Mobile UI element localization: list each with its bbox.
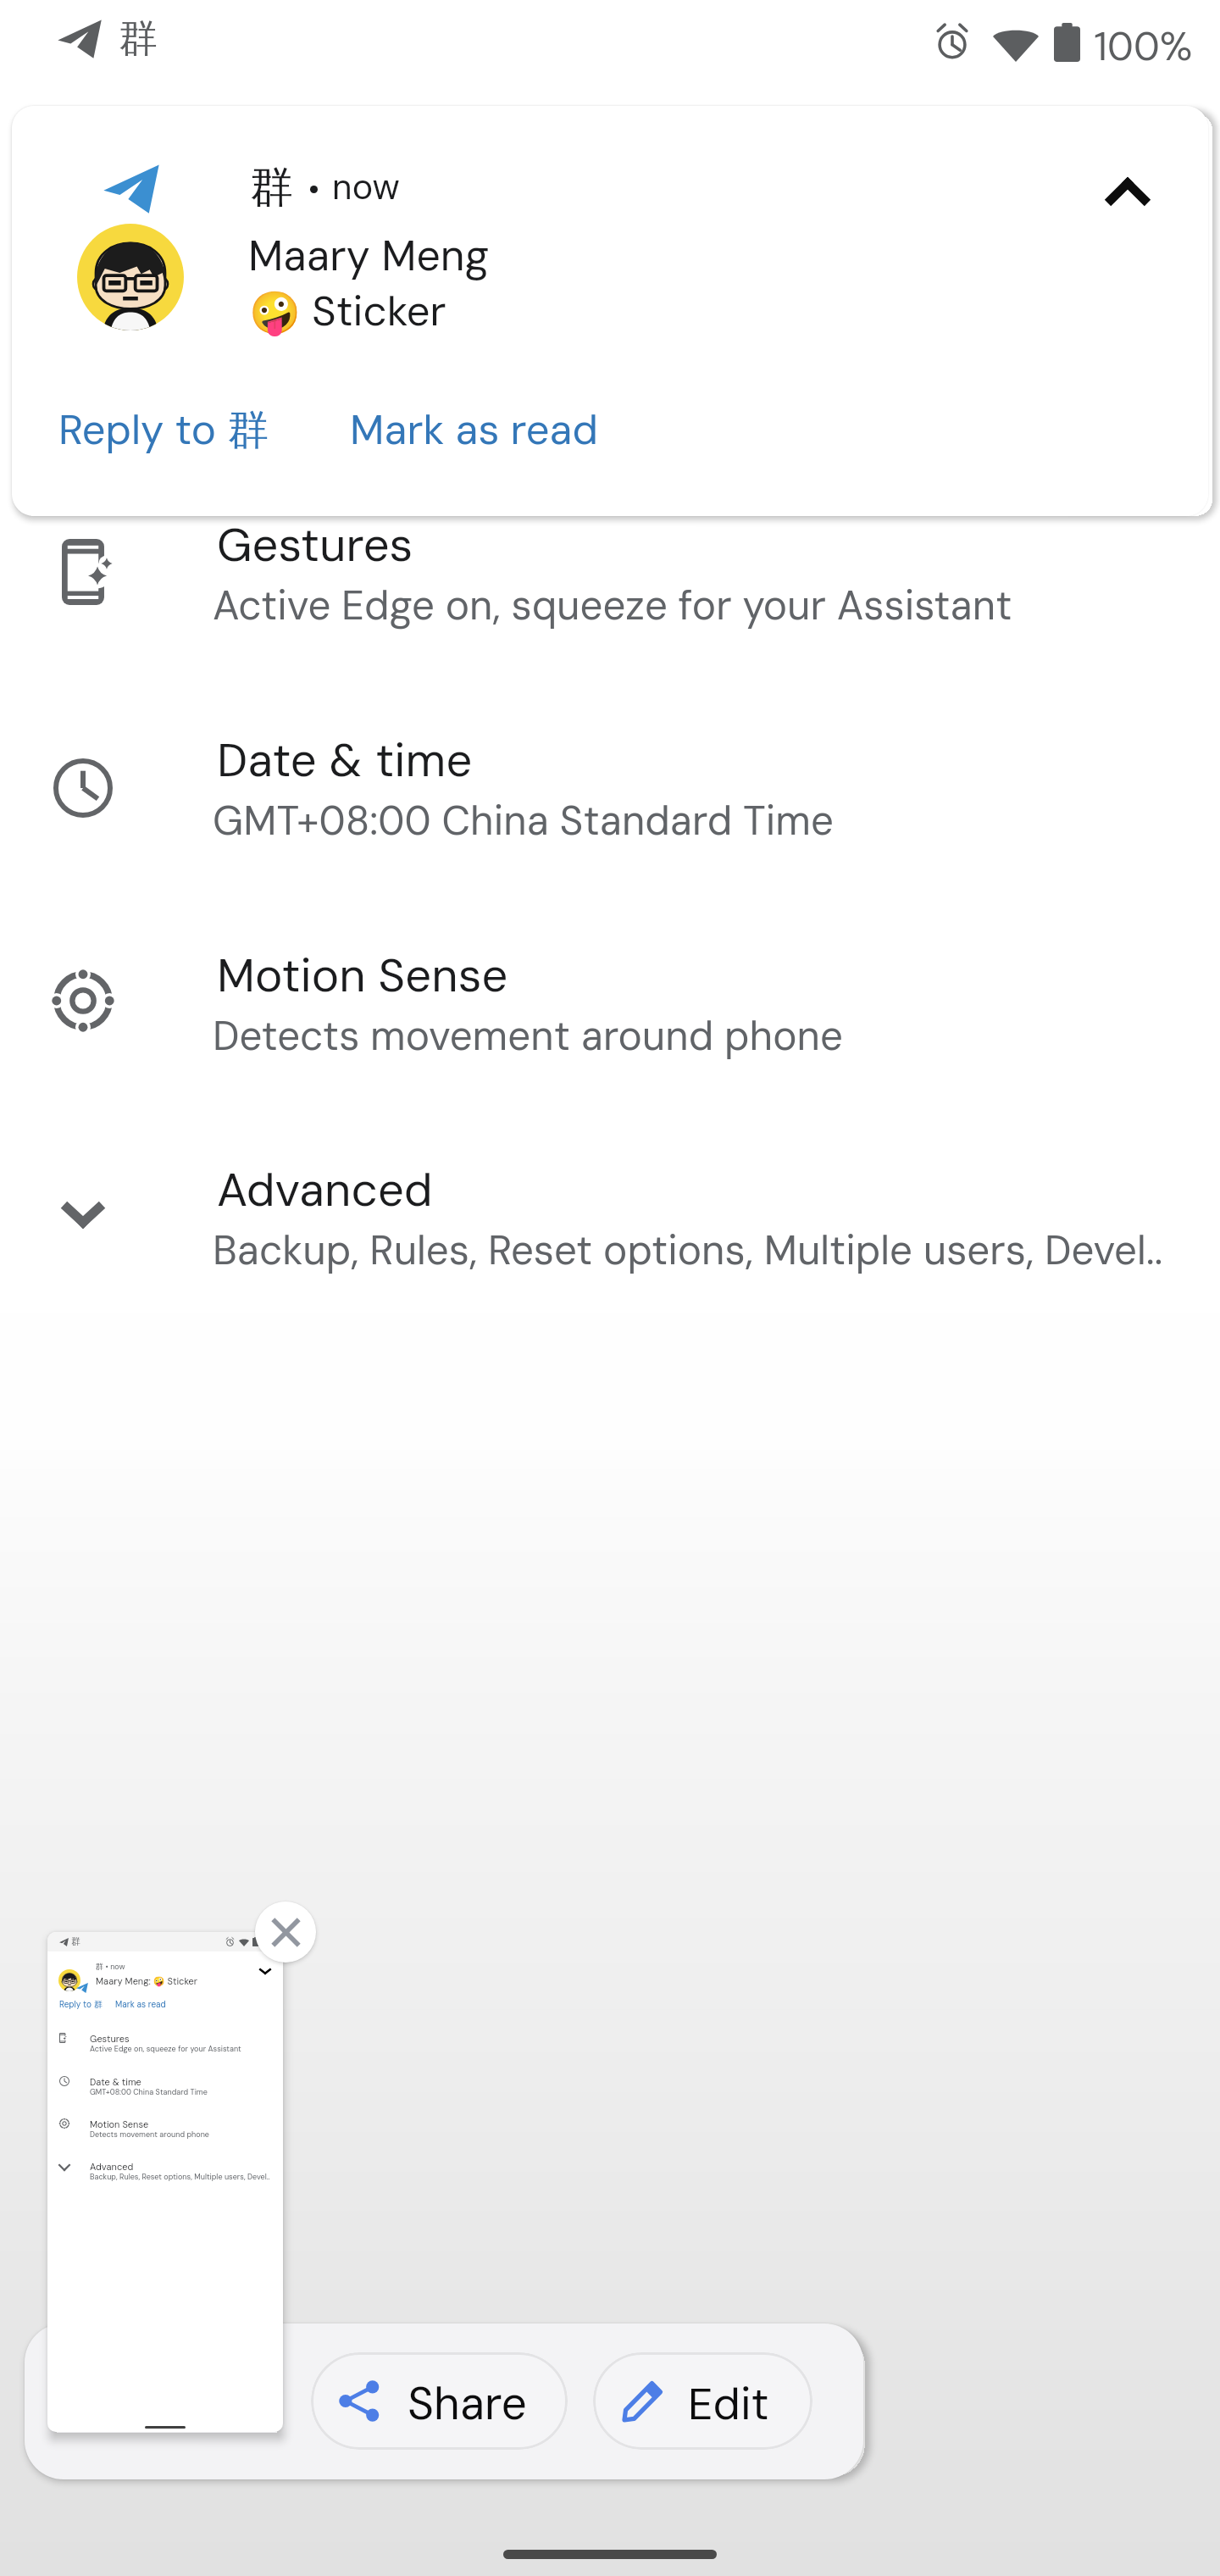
button[interactable]: Dismiss screenshot xyxy=(255,1901,316,1963)
staticText: 100% xyxy=(1094,20,1193,72)
staticText: Date & time xyxy=(217,730,473,791)
staticText: Gestures xyxy=(217,515,413,575)
staticText: 🤪 xyxy=(249,289,302,337)
staticText: Edit xyxy=(688,2375,769,2433)
staticText: Backup, Rules, Reset options, Multiple u… xyxy=(213,1224,1163,1277)
button[interactable]: Advanced xyxy=(0,1114,1220,1329)
button[interactable]: Motion Sense xyxy=(0,900,1220,1114)
button[interactable]: Collapse notification xyxy=(1077,141,1178,242)
staticText: Advanced xyxy=(90,2161,134,2173)
staticText: 群 xyxy=(250,160,293,214)
staticText: Mark as read xyxy=(115,1999,166,2010)
staticText: GMT+08:00 China Standard Time xyxy=(213,795,834,847)
staticText: Advanced xyxy=(217,1160,433,1220)
staticText: Active Edge on, squeeze for your Assista… xyxy=(90,2044,241,2054)
staticText: Mark as read xyxy=(350,402,598,457)
staticText: Maary Meng xyxy=(248,228,490,283)
staticText: Detects movement around phone xyxy=(213,1010,843,1063)
staticText: GMT+08:00 China Standard Time xyxy=(90,2087,208,2097)
staticText: Reply to 群 xyxy=(59,1999,103,2010)
button[interactable]: Date & time xyxy=(0,685,1220,899)
button[interactable]: Reply to 群 xyxy=(47,392,281,467)
staticText: Maary Meng: 🤪 Sticker xyxy=(96,1975,198,1987)
staticText: Active Edge on, squeeze for your Assista… xyxy=(213,580,1012,632)
staticText: 群 xyxy=(71,1935,80,1947)
button[interactable]: Edit xyxy=(593,2352,812,2450)
staticText: Share xyxy=(408,2374,527,2433)
staticText: Date & time xyxy=(90,2076,141,2088)
staticText: Sticker xyxy=(312,284,446,338)
button[interactable]: 群 xyxy=(12,106,1208,516)
staticText: Gestures xyxy=(90,2033,130,2045)
button[interactable]: Screenshot preview xyxy=(47,1932,283,2432)
staticText: 群 • now xyxy=(96,1962,125,1972)
staticText: Reply to 群 xyxy=(58,402,269,457)
staticText: Detects movement around phone xyxy=(90,2129,209,2140)
button[interactable]: Gestures xyxy=(0,469,1220,684)
staticText: Motion Sense xyxy=(217,946,508,1006)
staticText: Backup, Rules, Reset options, Multiple u… xyxy=(90,2172,270,2182)
button[interactable]: Share xyxy=(311,2352,568,2450)
staticText: 群 xyxy=(119,14,158,64)
staticText: now xyxy=(332,164,400,209)
button[interactable]: Mark as read xyxy=(338,392,610,467)
staticText: Motion Sense xyxy=(90,2118,149,2130)
